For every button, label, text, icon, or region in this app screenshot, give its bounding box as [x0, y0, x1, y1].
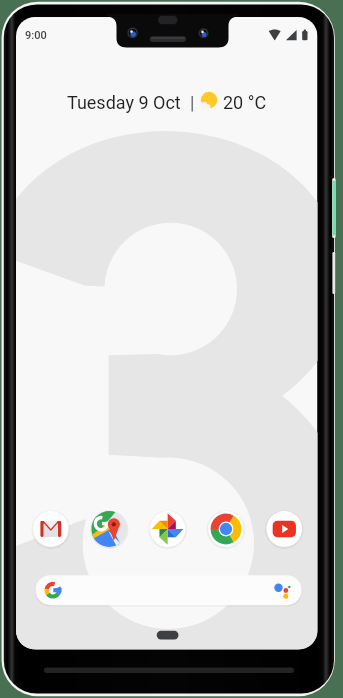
- staticText: 20 °C: [223, 92, 267, 113]
- button[interactable]: Tuesday 9 Oct: [67, 90, 267, 112]
- button[interactable]: Gmail: [33, 511, 69, 547]
- button[interactable]: Photos: [150, 511, 186, 547]
- button[interactable]: Chrome: [208, 511, 244, 547]
- staticText: Tuesday 9 Oct: [67, 92, 181, 113]
- button[interactable]: Google search: [36, 575, 302, 605]
- button[interactable]: Maps: [91, 511, 127, 547]
- staticText: |: [190, 92, 195, 113]
- button[interactable]: YouTube: [266, 511, 302, 547]
- staticText: 9:00: [25, 29, 47, 42]
